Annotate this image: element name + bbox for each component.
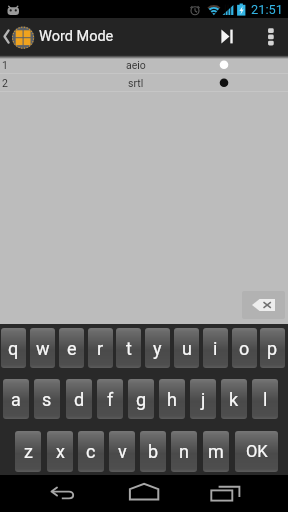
button[interactable]: y [145,328,170,368]
staticText: l [263,389,268,410]
button[interactable]: f [97,379,123,419]
button[interactable]: 2 [0,74,288,91]
button[interactable]: e [59,328,84,368]
staticText: m [208,441,224,462]
button[interactable]: s [34,379,60,419]
staticText: n [179,441,189,462]
button[interactable]: Next [210,18,256,55]
button[interactable]: More options [256,18,288,55]
button[interactable]: Back [42,475,86,512]
button[interactable]: h [159,379,185,419]
button[interactable]: w [30,328,55,368]
button[interactable]: g [128,379,154,419]
button[interactable]: u [174,328,199,368]
button[interactable]: z [15,431,41,472]
staticText: 21:51 [251,2,283,17]
staticText: j [201,389,206,410]
button[interactable]: r [88,328,113,368]
button[interactable]: l [252,379,278,419]
staticText: r [97,338,104,359]
staticText: x [56,441,65,462]
staticText: a [11,389,21,410]
button[interactable]: j [190,379,216,419]
button[interactable]: i [203,328,228,368]
staticText: e [67,338,77,359]
staticText: t [126,338,132,359]
button[interactable]: v [109,431,135,472]
button[interactable]: k [221,379,247,419]
button[interactable]: n [171,431,197,472]
staticText: h [167,389,177,410]
staticText: d [74,389,85,410]
button[interactable]: q [1,328,26,368]
staticText: Word Mode [39,28,114,45]
button[interactable]: d [66,379,92,419]
staticText: c [86,441,96,462]
staticText: w [36,338,50,359]
button[interactable]: Navigate up [0,18,120,55]
staticText: g [136,389,147,410]
button[interactable]: OK [235,431,278,472]
button[interactable]: Home [124,475,164,512]
staticText: srtl [128,77,144,89]
staticText: p [267,338,278,359]
staticText: q [8,338,19,359]
staticText: u [182,338,192,359]
staticText: i [213,338,218,359]
button[interactable]: Recent apps [206,475,246,512]
staticText: y [153,338,162,359]
staticText: s [42,389,52,410]
staticText: k [229,389,239,410]
button[interactable]: Backspace [242,291,285,319]
staticText: OK [246,442,268,461]
staticText: f [107,389,114,410]
button[interactable]: c [78,431,104,472]
staticText: 2 [2,77,8,89]
staticText: aeio [126,59,146,71]
button[interactable]: m [203,431,229,472]
staticText: b [148,441,159,462]
staticText: v [118,441,127,462]
button[interactable]: x [47,431,73,472]
button[interactable]: p [260,328,285,368]
button[interactable]: 1 [0,56,288,73]
button[interactable]: b [140,431,166,472]
button[interactable]: o [232,328,257,368]
staticText: z [24,441,33,462]
button[interactable]: a [3,379,29,419]
staticText: 1 [2,59,8,71]
staticText: o [239,338,250,359]
button[interactable]: t [116,328,141,368]
